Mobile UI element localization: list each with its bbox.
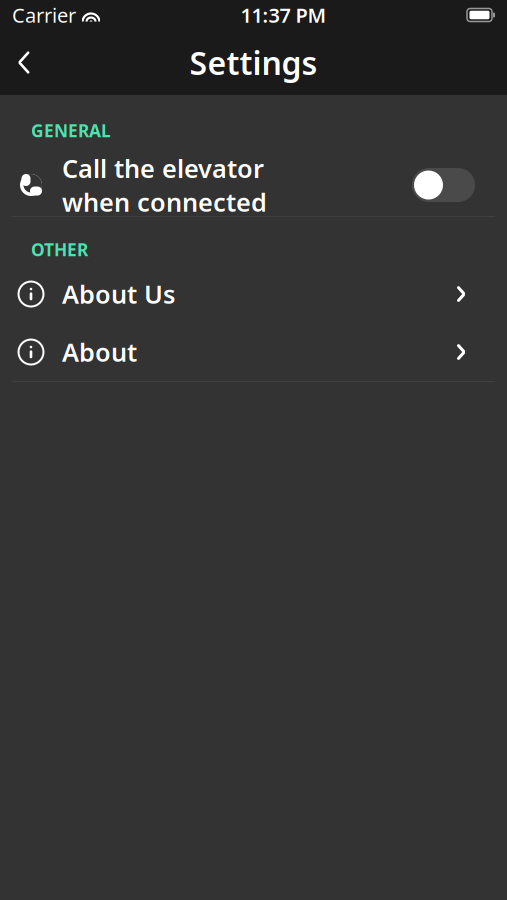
staticText: 11:37 PM [240,2,326,28]
staticText: Settings [189,41,317,84]
staticText: Carrier [12,2,76,28]
staticText: Call the elevator when connected [62,151,267,219]
button[interactable]: About [0,323,507,381]
button[interactable]: Back [0,38,48,86]
staticText: About Us [62,277,175,311]
staticText: OTHER [31,238,88,261]
staticText: GENERAL [31,119,111,142]
button[interactable]: Call the elevator when connected [412,168,475,202]
button[interactable]: About Us [0,265,507,323]
staticText: About [62,335,137,369]
